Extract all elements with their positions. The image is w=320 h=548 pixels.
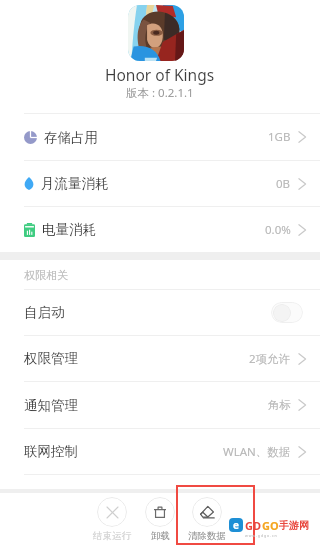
staticText: 版本 : 0.2.1.1 xyxy=(126,85,194,101)
button[interactable]: 电量消耗 xyxy=(0,207,320,252)
staticText: Honor of Kings xyxy=(105,64,215,85)
staticText: 角标 xyxy=(268,398,291,412)
button[interactable]: Uninstall xyxy=(120,497,200,542)
staticText: GD xyxy=(245,518,262,533)
button[interactable]: Clear data xyxy=(167,497,247,542)
button[interactable]: 月流量消耗 xyxy=(0,161,320,206)
button[interactable]: 权限管理 xyxy=(0,336,320,381)
staticText: 存储占用 xyxy=(44,129,98,146)
other: Clear data xyxy=(200,505,214,519)
staticText: 0B xyxy=(276,176,291,192)
button[interactable]: Force stop xyxy=(72,497,152,542)
other: Force stop xyxy=(107,507,118,518)
staticText: e xyxy=(233,518,239,532)
staticText: 联网控制 xyxy=(24,443,78,460)
staticText: w w w . g d g o . c n xyxy=(245,533,277,538)
button[interactable]: 存储占用 xyxy=(0,114,320,160)
staticText: 清除数据 xyxy=(188,530,226,542)
staticText: 自启动 xyxy=(24,304,65,321)
staticText: WLAN、数据 xyxy=(223,444,291,460)
button[interactable]: 通知管理 xyxy=(0,382,320,428)
other: Uninstall xyxy=(154,506,166,518)
button[interactable]: Auto start toggle xyxy=(271,302,303,323)
button[interactable]: 联网控制 xyxy=(0,429,320,474)
staticText: 2项允许 xyxy=(249,351,291,367)
staticText: 权限相关 xyxy=(24,268,68,282)
staticText: GO xyxy=(262,518,279,533)
staticText: 结束运行 xyxy=(93,530,131,542)
staticText: 月流量消耗 xyxy=(41,175,109,192)
staticText: 1GB xyxy=(268,129,291,145)
staticText: 通知管理 xyxy=(24,397,78,414)
staticText: 权限管理 xyxy=(24,350,78,367)
button[interactable]: 自启动 xyxy=(0,290,320,335)
staticText: 手游网 xyxy=(279,519,309,532)
staticText: 0.0% xyxy=(265,222,291,238)
staticText: 卸载 xyxy=(151,530,170,542)
staticText: 电量消耗 xyxy=(42,221,96,238)
